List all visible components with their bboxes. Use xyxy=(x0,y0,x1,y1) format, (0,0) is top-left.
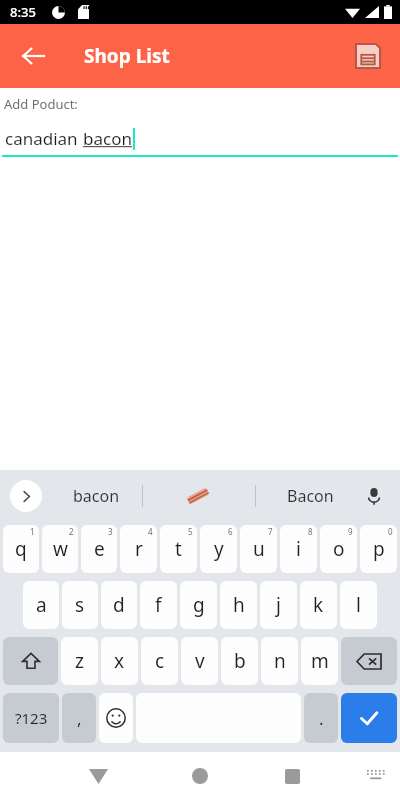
button[interactable]: Shift xyxy=(3,637,58,685)
staticText: 8 xyxy=(308,526,313,537)
button[interactable]: n xyxy=(261,637,298,685)
staticText: e xyxy=(94,536,105,562)
button[interactable]: , xyxy=(62,693,96,743)
staticText: h xyxy=(233,592,245,618)
staticText: 2 xyxy=(69,526,74,537)
button[interactable]: Back xyxy=(12,35,54,77)
staticText: o xyxy=(333,536,345,562)
button[interactable]: c xyxy=(141,637,178,685)
button[interactable]: bacon xyxy=(50,473,142,519)
staticText: b xyxy=(234,648,246,674)
staticText: g xyxy=(193,592,205,618)
staticText: n xyxy=(274,648,286,674)
button[interactable]: r xyxy=(120,525,157,573)
button[interactable]: a xyxy=(23,581,59,629)
staticText: 7 xyxy=(268,526,273,537)
button[interactable]: z xyxy=(61,637,98,685)
button[interactable]: y xyxy=(200,525,237,573)
button[interactable]: k xyxy=(300,581,337,629)
staticText: r xyxy=(135,536,143,562)
staticText: Shop List xyxy=(84,43,170,69)
staticText: Add Poduct: xyxy=(4,95,78,113)
staticText: bacon xyxy=(83,127,132,150)
button[interactable]: e xyxy=(81,525,117,573)
button[interactable]: canadian xyxy=(0,121,400,155)
staticText: 5 xyxy=(188,526,193,537)
button[interactable]: j xyxy=(260,581,297,629)
staticText: 9 xyxy=(348,526,353,537)
button[interactable]: g xyxy=(180,581,217,629)
button[interactable]: d xyxy=(101,581,137,629)
staticText: a xyxy=(36,592,47,618)
staticText: 4 xyxy=(148,526,153,537)
button[interactable]: s xyxy=(62,581,98,629)
button[interactable]: ?123 xyxy=(3,693,59,743)
staticText: 1 xyxy=(30,526,35,537)
staticText: m xyxy=(311,648,329,674)
staticText: k xyxy=(313,592,324,618)
staticText: i xyxy=(296,536,301,562)
staticText: t xyxy=(175,536,182,562)
button[interactable]: u xyxy=(240,525,277,573)
staticText: x xyxy=(114,648,125,674)
button[interactable]: Switch keyboard xyxy=(358,758,394,794)
button[interactable]: p xyxy=(360,525,397,573)
staticText: 8:35 xyxy=(10,3,36,21)
button[interactable]: f xyxy=(140,581,177,629)
staticText: z xyxy=(75,648,84,674)
button[interactable]: More suggestions xyxy=(10,480,42,512)
button[interactable]: o xyxy=(320,525,357,573)
button[interactable]: i xyxy=(280,525,317,573)
button[interactable]: Home xyxy=(178,754,222,798)
button[interactable]: Back xyxy=(76,754,120,798)
button[interactable]: m xyxy=(301,637,338,685)
button[interactable]: Voice input xyxy=(354,476,394,516)
button[interactable]: Recents xyxy=(270,754,314,798)
button[interactable]: w xyxy=(42,525,78,573)
button[interactable]: Bacon emoji xyxy=(176,474,220,518)
staticText: Bacon xyxy=(287,485,334,507)
staticText: 0 xyxy=(388,526,393,537)
staticText: ?123 xyxy=(15,708,48,728)
button[interactable]: . xyxy=(304,693,338,743)
staticText: , xyxy=(77,707,82,730)
button[interactable]: t xyxy=(160,525,197,573)
staticText: l xyxy=(356,592,361,618)
button[interactable]: b xyxy=(221,637,258,685)
staticText: j xyxy=(276,592,281,618)
button[interactable]: x xyxy=(101,637,138,685)
staticText: . xyxy=(319,707,324,730)
staticText: u xyxy=(253,536,265,562)
button[interactable]: Save xyxy=(346,34,390,78)
staticText: s xyxy=(75,592,85,618)
button[interactable]: v xyxy=(181,637,218,685)
staticText: d xyxy=(113,592,125,618)
staticText: w xyxy=(53,536,68,562)
staticText: canadian xyxy=(5,127,83,150)
staticText: y xyxy=(214,536,224,562)
staticText: q xyxy=(15,536,27,562)
button[interactable]: Enter xyxy=(341,693,397,743)
staticText: v xyxy=(195,648,205,674)
staticText: f xyxy=(155,592,162,618)
button[interactable]: h xyxy=(220,581,257,629)
staticText: 6 xyxy=(228,526,233,537)
button[interactable]: q xyxy=(3,525,39,573)
button[interactable]: l xyxy=(340,581,377,629)
staticText: bacon xyxy=(73,485,120,507)
button[interactable]: Bacon xyxy=(272,473,348,519)
staticText: c xyxy=(155,648,165,674)
button[interactable]: Emoji xyxy=(99,693,133,743)
button[interactable]: Backspace xyxy=(341,637,397,685)
staticText: 3 xyxy=(108,526,113,537)
staticText: p xyxy=(373,536,385,562)
